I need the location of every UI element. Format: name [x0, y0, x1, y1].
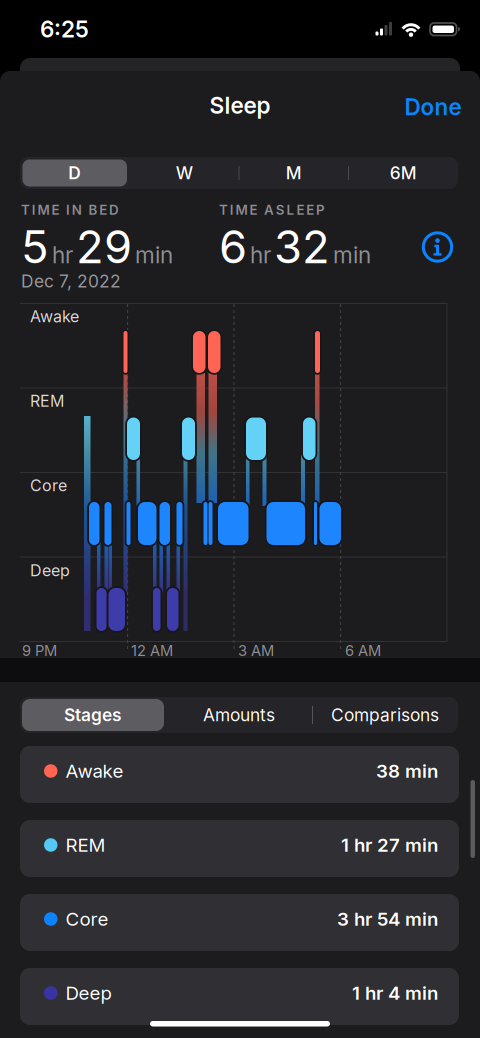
- staticText: 12 AM: [131, 642, 173, 659]
- button[interactable]: Comparisons: [315, 699, 455, 731]
- button[interactable]: Amounts: [169, 699, 309, 731]
- button[interactable]: REM: [20, 820, 459, 877]
- staticText: 1 hr 27 min: [341, 834, 438, 856]
- staticText: Awake: [30, 307, 79, 326]
- staticText: Comparisons: [331, 705, 439, 725]
- button[interactable]: Deep: [20, 968, 459, 1025]
- staticText: hr: [52, 242, 73, 268]
- staticText: Dec 7, 2022: [21, 271, 121, 291]
- staticText: REM: [30, 391, 64, 410]
- staticText: Stages: [64, 705, 122, 725]
- staticText: REM: [65, 834, 105, 856]
- staticText: 6 AM: [345, 642, 381, 659]
- button[interactable]: Done: [404, 94, 461, 120]
- staticText: 6: [219, 220, 247, 273]
- staticText: hr: [250, 242, 271, 268]
- staticText: Done: [404, 94, 461, 120]
- staticText: 5: [21, 220, 49, 273]
- staticText: 32: [274, 220, 330, 273]
- staticText: Amounts: [203, 705, 275, 725]
- staticText: TIME IN BED: [21, 202, 119, 218]
- staticText: Core: [65, 908, 108, 930]
- staticText: Core: [30, 476, 67, 495]
- staticText: 3 AM: [238, 642, 274, 659]
- button[interactable]: Awake: [20, 746, 459, 803]
- staticText: D: [68, 163, 81, 183]
- staticText: 1 hr 4 min: [352, 982, 438, 1004]
- staticText: Awake: [65, 760, 123, 782]
- staticText: 6M: [390, 163, 417, 183]
- staticText: W: [176, 163, 193, 183]
- staticText: Deep: [65, 982, 111, 1004]
- staticText: M: [286, 163, 302, 183]
- button[interactable]: Core: [20, 894, 459, 951]
- staticText: Sleep: [209, 92, 270, 119]
- button[interactable]: More information: [421, 231, 453, 263]
- staticText: 9 PM: [22, 642, 57, 659]
- button[interactable]: W: [132, 158, 236, 188]
- button[interactable]: 6M: [351, 158, 455, 188]
- button[interactable]: M: [242, 158, 346, 188]
- staticText: TIME ASLEEP: [219, 202, 325, 218]
- staticText: min: [333, 242, 371, 268]
- button[interactable]: D: [23, 158, 127, 188]
- staticText: 38 min: [376, 760, 438, 782]
- staticText: Deep: [30, 561, 70, 580]
- button[interactable]: Stages: [23, 699, 163, 731]
- staticText: 3 hr 54 min: [337, 908, 438, 930]
- staticText: min: [135, 242, 173, 268]
- staticText: 29: [76, 220, 132, 273]
- staticText: 6:25: [40, 16, 89, 43]
